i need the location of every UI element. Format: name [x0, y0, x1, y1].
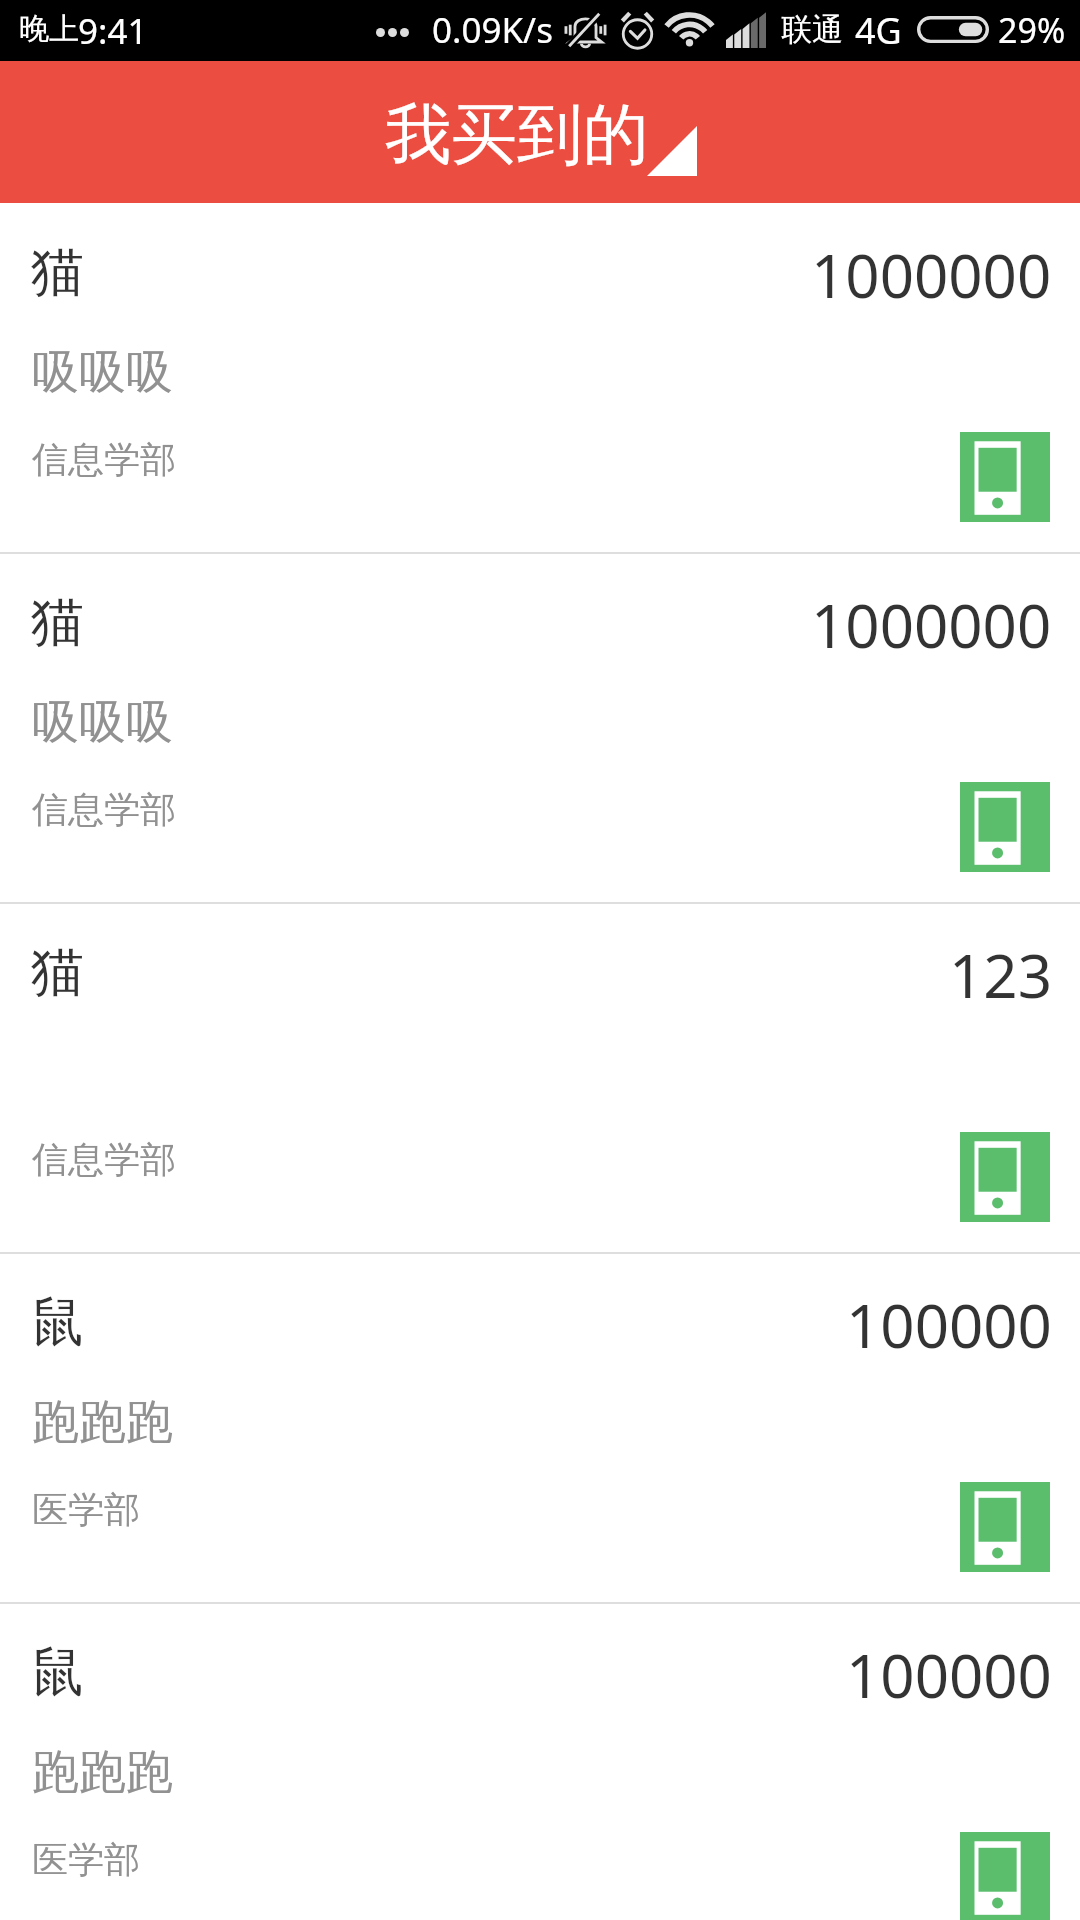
staticText: 猫 [31, 939, 84, 1006]
staticText: 9:41 [78, 7, 148, 55]
button[interactable]: 手机联系方式 [960, 1482, 1050, 1572]
staticText: 1000000 [811, 234, 1052, 316]
button[interactable]: 猫 [0, 554, 1080, 904]
staticText: 0.09K/s [432, 6, 553, 54]
staticText: 跑跑跑 [32, 1393, 173, 1452]
staticText: 4G [855, 6, 902, 55]
button[interactable]: 猫 [0, 904, 1080, 1254]
button[interactable]: 猫 [0, 204, 1080, 554]
staticText: 猫 [31, 239, 84, 306]
staticText: 1000000 [811, 584, 1052, 666]
staticText: 医学部 [32, 1837, 140, 1882]
button[interactable]: 鼠 [0, 1254, 1080, 1604]
staticText: 100000 [846, 1634, 1052, 1716]
button[interactable]: 手机联系方式 [960, 432, 1050, 522]
button[interactable]: 鼠 [0, 1604, 1080, 1920]
staticText: 吸吸吸 [32, 343, 173, 402]
staticText: 鼠 [31, 1289, 84, 1356]
staticText: 猫 [31, 589, 84, 656]
staticText: 29% [998, 7, 1066, 53]
staticText: 吸吸吸 [32, 693, 173, 752]
staticText: 信息学部 [32, 787, 176, 832]
staticText: 跑跑跑 [32, 1743, 173, 1802]
staticText: 联通 [781, 10, 843, 49]
staticText: 医学部 [32, 1487, 140, 1532]
staticText: 我买到的 [385, 93, 649, 176]
button[interactable]: 手机联系方式 [960, 1132, 1050, 1222]
staticText: 信息学部 [32, 437, 176, 482]
staticText: 鼠 [31, 1639, 84, 1706]
button[interactable]: 手机联系方式 [960, 1832, 1050, 1920]
staticText: 信息学部 [32, 1137, 176, 1182]
other: 筛选 [647, 126, 697, 176]
staticText: 100000 [846, 1284, 1052, 1366]
button[interactable]: 手机联系方式 [960, 782, 1050, 872]
staticText: 123 [949, 934, 1052, 1016]
staticText: 晚上 [19, 10, 79, 48]
button[interactable]: 我买到的 [0, 61, 1080, 203]
